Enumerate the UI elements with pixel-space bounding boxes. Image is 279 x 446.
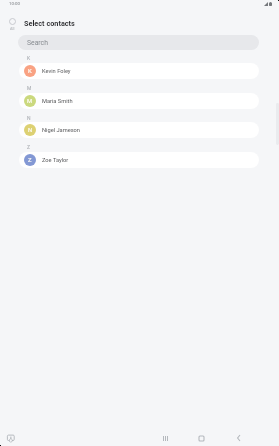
button[interactable]: Search contacts: [18, 35, 259, 50]
staticText: K: [27, 55, 31, 61]
button[interactable]: M: [19, 93, 259, 109]
staticText: Z: [28, 157, 32, 164]
staticText: 10:00: [9, 1, 20, 6]
button[interactable]: Select all: [4, 15, 21, 30]
button[interactable]: Z: [19, 152, 259, 168]
staticText: Search: [27, 39, 48, 47]
staticText: M: [27, 98, 33, 105]
button[interactable]: Hide keyboard: [5, 432, 17, 444]
button[interactable]: Home: [195, 432, 207, 444]
button[interactable]: K: [19, 63, 259, 79]
button[interactable]: Back: [232, 432, 244, 444]
staticText: Zoe Taylor: [42, 157, 69, 164]
staticText: All: [10, 26, 15, 30]
staticText: Kevin Foley: [42, 68, 71, 75]
staticText: Z: [27, 144, 30, 150]
staticText: Maria Smith: [42, 98, 73, 105]
staticText: K: [28, 68, 32, 75]
staticText: M: [27, 85, 32, 91]
staticText: Nigel Jameson: [42, 127, 80, 134]
staticText: Select contacts: [24, 19, 75, 28]
staticText: N: [28, 127, 33, 134]
staticText: N: [27, 115, 31, 121]
button[interactable]: N: [19, 122, 259, 138]
button[interactable]: Recents: [159, 432, 171, 444]
